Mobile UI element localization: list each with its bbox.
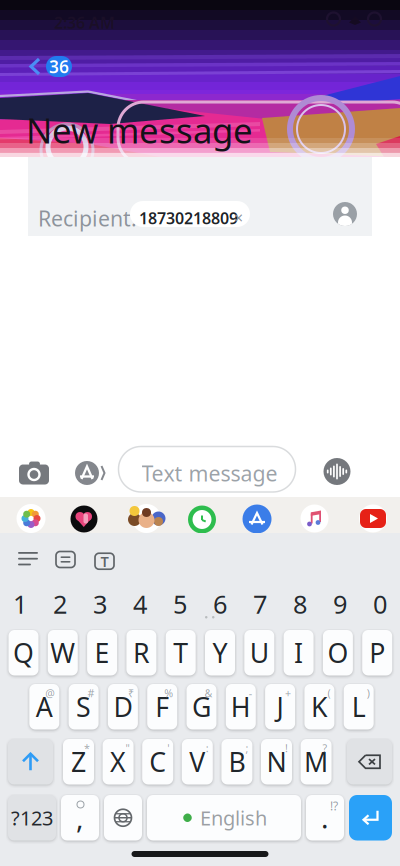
button[interactable]: 9	[320, 590, 360, 618]
button[interactable]: Space	[147, 795, 301, 840]
button[interactable]: B	[221, 739, 252, 784]
button[interactable]: F	[147, 684, 177, 729]
button[interactable]: 1	[0, 590, 40, 618]
button[interactable]: Menu	[18, 552, 38, 565]
staticText: (	[327, 686, 330, 700]
button[interactable]: N	[261, 739, 292, 784]
button[interactable]: O	[323, 630, 353, 675]
button[interactable]: 3	[80, 590, 120, 618]
staticText: Z	[71, 744, 86, 779]
button[interactable]: Camera	[19, 460, 49, 483]
button[interactable]: Back	[0, 0, 26, 21]
button[interactable]: X	[103, 739, 134, 784]
staticText: H	[231, 689, 251, 724]
button[interactable]: Music	[295, 504, 334, 532]
button[interactable]: J	[265, 684, 295, 729]
button[interactable]: Return	[349, 795, 392, 840]
staticText: N	[266, 744, 286, 779]
button[interactable]: 4	[120, 590, 160, 618]
staticText: %	[164, 686, 173, 700]
button[interactable]: Q	[8, 630, 38, 675]
button[interactable]: D	[108, 684, 138, 729]
staticText: 9	[333, 587, 347, 621]
button[interactable]: Photos	[10, 504, 52, 533]
button[interactable]: Switch keyboard	[104, 795, 142, 840]
staticText: ?	[323, 741, 328, 755]
staticText: V	[189, 744, 205, 779]
staticText: X	[110, 744, 126, 779]
button[interactable]: Delete	[347, 739, 392, 784]
button[interactable]: Z	[63, 739, 94, 784]
staticText: L	[352, 689, 366, 724]
button[interactable]: Y	[205, 630, 235, 675]
staticText: +	[285, 686, 291, 700]
button[interactable]: Text editor	[95, 551, 114, 571]
staticText: P	[369, 635, 385, 670]
button[interactable]: Clock	[181, 505, 222, 533]
button[interactable]: Clipboard	[56, 551, 75, 567]
button[interactable]: H	[226, 684, 256, 729]
button[interactable]: U	[244, 630, 274, 675]
staticText: &	[204, 686, 212, 700]
button[interactable]: 18730218809	[130, 201, 250, 227]
button[interactable]: YouTube	[353, 504, 393, 532]
button[interactable]: Text message	[118, 446, 295, 492]
button[interactable]: Comma	[61, 795, 99, 840]
button[interactable]: Digital Touch	[63, 505, 104, 532]
staticText: New message	[26, 107, 253, 153]
staticText: O	[327, 635, 348, 670]
button[interactable]: Voice message	[323, 458, 350, 485]
staticText: S	[76, 689, 91, 724]
staticText: !?	[330, 798, 338, 814]
button[interactable]: 7	[240, 590, 280, 618]
button[interactable]: R	[126, 630, 156, 675]
button[interactable]: App Store	[237, 504, 277, 533]
button[interactable]: Period	[306, 795, 344, 840]
button[interactable]: M	[301, 739, 332, 784]
staticText: E	[95, 635, 110, 670]
staticText: English	[200, 804, 267, 831]
button[interactable]: G	[186, 684, 216, 729]
button[interactable]: Add contact	[333, 202, 357, 226]
staticText: !	[285, 741, 288, 755]
staticText: 18730218809	[139, 207, 238, 229]
button[interactable]: 0	[360, 590, 400, 618]
staticText: @	[45, 686, 55, 700]
button[interactable]: V	[182, 739, 213, 784]
staticText: 36	[49, 55, 69, 78]
button[interactable]: S	[69, 684, 99, 729]
staticText: T	[173, 635, 188, 670]
staticText: B	[228, 744, 245, 779]
button[interactable]: 5	[160, 590, 200, 618]
button[interactable]: Symbols	[8, 795, 56, 840]
button[interactable]: Memoji Stickers	[124, 504, 168, 533]
staticText: "	[126, 741, 130, 755]
staticText: ,	[76, 799, 84, 836]
button[interactable]: E	[87, 630, 117, 675]
staticText: 2:36 AM	[54, 12, 115, 33]
staticText: :	[206, 741, 209, 755]
staticText: 4	[133, 587, 147, 621]
staticText: *	[84, 741, 90, 755]
button[interactable]: T	[166, 630, 196, 675]
button[interactable]: 2	[40, 590, 80, 618]
staticText: Text message	[141, 459, 277, 487]
button[interactable]: W	[48, 630, 78, 675]
button[interactable]: C	[142, 739, 173, 784]
staticText: 1	[13, 587, 27, 621]
staticText: ;	[245, 741, 248, 755]
button[interactable]: 6	[200, 590, 240, 618]
button[interactable]: L	[344, 684, 374, 729]
button[interactable]: P	[362, 630, 392, 675]
staticText: C	[149, 744, 166, 779]
button[interactable]: 8	[280, 590, 320, 618]
staticText: .	[321, 799, 329, 836]
staticText: 5	[173, 587, 187, 621]
button[interactable]: Apps	[72, 461, 106, 485]
staticText: K	[311, 689, 328, 724]
button[interactable]: Shift	[8, 739, 53, 784]
button[interactable]: K	[304, 684, 334, 729]
button[interactable]: I	[284, 630, 314, 675]
button[interactable]: A	[29, 684, 59, 729]
staticText: F	[155, 689, 169, 724]
